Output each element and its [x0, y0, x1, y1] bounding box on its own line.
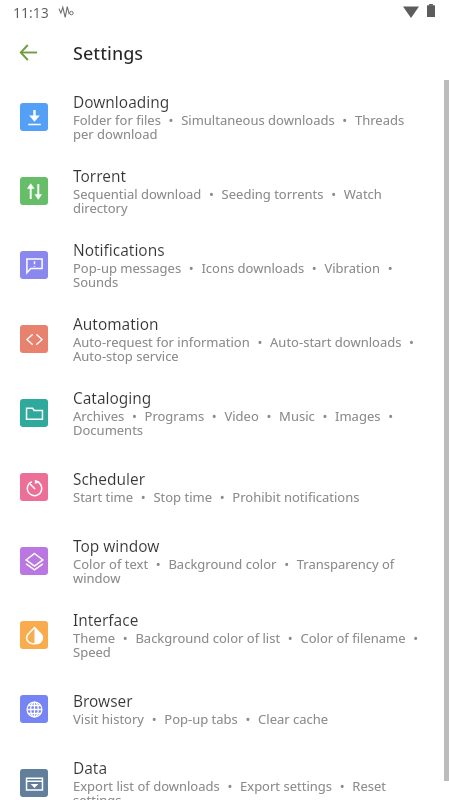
staticText: Interface [73, 613, 139, 630]
staticText: Export list of downloads • Export settin… [73, 780, 420, 800]
button[interactable]: Interface [0, 598, 449, 672]
button[interactable]: Cataloging [0, 376, 449, 450]
staticText: Top window [73, 539, 160, 556]
staticText: Scheduler [73, 472, 146, 489]
staticText: Visit history • Pop-up tabs • Clear cach… [73, 713, 329, 727]
staticText: Data [73, 761, 108, 778]
staticText: Automation [73, 317, 159, 334]
staticText: Sequential download • Seeding torrents •… [73, 188, 420, 216]
staticText: Color of text • Background color • Trans… [73, 558, 420, 586]
staticText: Browser [73, 694, 133, 711]
staticText: Pop-up messages • Icons downloads • Vibr… [73, 262, 420, 290]
staticText: Archives • Programs • Video • Music • Im… [73, 410, 420, 438]
staticText: Notifications [73, 243, 165, 260]
staticText: Settings [73, 41, 144, 66]
button[interactable]: Downloading [0, 80, 449, 154]
staticText: Cataloging [73, 391, 152, 408]
staticText: Folder for files • Simultaneous download… [73, 114, 420, 142]
button[interactable]: Torrent [0, 154, 449, 228]
button[interactable]: Back [8, 32, 48, 72]
staticText: Downloading [73, 95, 170, 112]
staticText: 11:13 [13, 3, 49, 22]
staticText: Theme • Background color of list • Color… [73, 632, 420, 660]
button[interactable]: Browser [0, 672, 449, 746]
button[interactable]: Top window [0, 524, 449, 598]
button[interactable]: Data [0, 746, 449, 800]
button[interactable]: Automation [0, 302, 449, 376]
button[interactable]: Scheduler [0, 450, 449, 524]
staticText: Torrent [73, 169, 126, 186]
button[interactable]: Notifications [0, 228, 449, 302]
staticText: Start time • Stop time • Prohibit notifi… [73, 491, 360, 505]
staticText: Auto-request for information • Auto-star… [73, 336, 420, 364]
